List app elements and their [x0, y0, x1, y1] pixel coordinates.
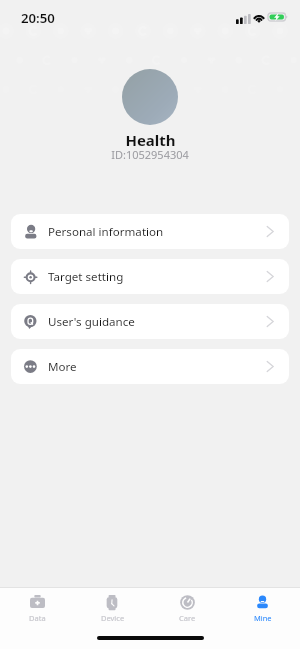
button[interactable]: Target setting — [11, 259, 289, 294]
button[interactable]: User's guidance — [11, 304, 289, 339]
staticText: Care — [179, 613, 196, 623]
button[interactable]: Care — [150, 595, 225, 623]
staticText: Target setting — [48, 269, 124, 285]
button[interactable]: Personal information — [11, 214, 289, 249]
staticText: Data — [29, 613, 46, 623]
staticText: ID:1052954304 — [111, 147, 189, 162]
button[interactable]: Mine — [225, 595, 300, 623]
button[interactable]: More — [11, 349, 289, 384]
staticText: More — [48, 359, 77, 375]
staticText: 20:50 — [21, 9, 55, 27]
staticText: Mine — [254, 613, 272, 623]
staticText: User's guidance — [48, 314, 135, 330]
button[interactable]: Data — [0, 595, 75, 623]
staticText: Device — [101, 613, 125, 623]
button[interactable]: Device — [75, 595, 150, 623]
button[interactable]: Profile photo — [122, 69, 178, 125]
staticText: Health — [125, 130, 176, 150]
staticText: Personal information — [48, 224, 164, 240]
